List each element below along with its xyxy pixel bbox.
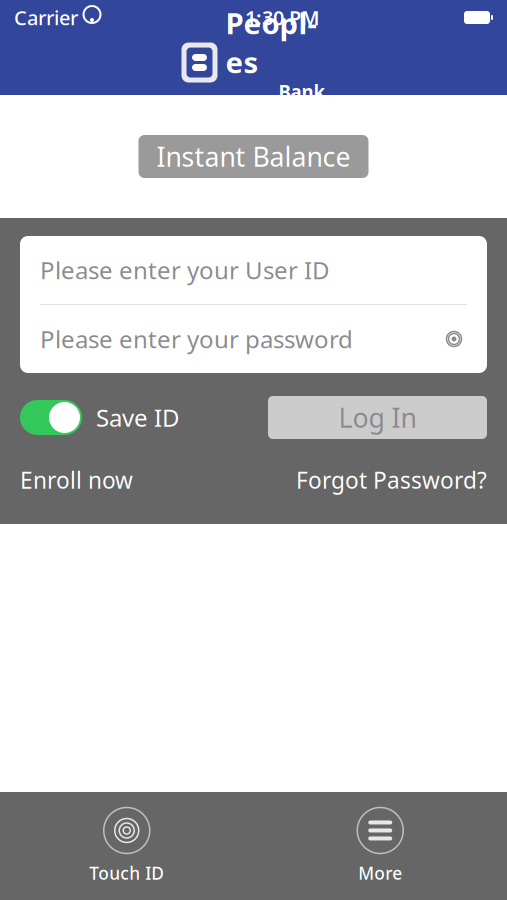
staticText: Instant Balance xyxy=(156,139,350,174)
staticText: Carrier xyxy=(14,4,78,31)
staticText: Please enter your password xyxy=(40,323,353,355)
staticText: More xyxy=(358,861,402,884)
staticText: Log In xyxy=(338,400,416,435)
staticText: Touch ID xyxy=(89,861,164,884)
staticText: Please enter your User ID xyxy=(40,254,330,286)
button[interactable]: Touch ID xyxy=(82,807,172,884)
button[interactable]: Save ID xyxy=(20,400,180,435)
button[interactable]: Please enter your password xyxy=(20,305,487,373)
staticText: 1:30 PM xyxy=(245,4,320,31)
button[interactable]: Forgot Password? xyxy=(296,465,487,495)
button[interactable]: Instant Balance xyxy=(138,135,368,178)
staticText: Save ID xyxy=(96,402,180,433)
staticText: Enroll now xyxy=(20,465,133,495)
button[interactable]: Log In xyxy=(268,396,487,439)
button[interactable]: Please enter your User ID xyxy=(20,236,487,304)
button[interactable]: Enroll now xyxy=(20,465,133,495)
button[interactable]: More xyxy=(335,807,425,884)
staticText: Peoples xyxy=(225,3,316,81)
staticText: Forgot Password? xyxy=(296,465,487,495)
staticText: Bank xyxy=(278,79,325,104)
